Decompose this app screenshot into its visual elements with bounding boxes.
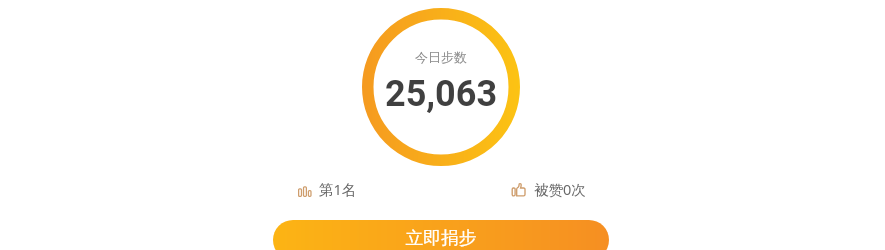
staticText: 立即捐步 — [405, 227, 477, 249]
staticText: 第1名 — [319, 179, 357, 199]
staticText: 被赞0次 — [534, 179, 586, 199]
button[interactable]: Likes — [508, 178, 586, 200]
button[interactable]: 立即捐步 — [273, 220, 609, 250]
staticText: 今日步数 — [415, 49, 467, 65]
other: Rank — [294, 178, 316, 200]
other: Likes — [508, 179, 530, 199]
staticText: 25,063 — [385, 73, 498, 115]
button[interactable]: Rank — [294, 178, 357, 200]
